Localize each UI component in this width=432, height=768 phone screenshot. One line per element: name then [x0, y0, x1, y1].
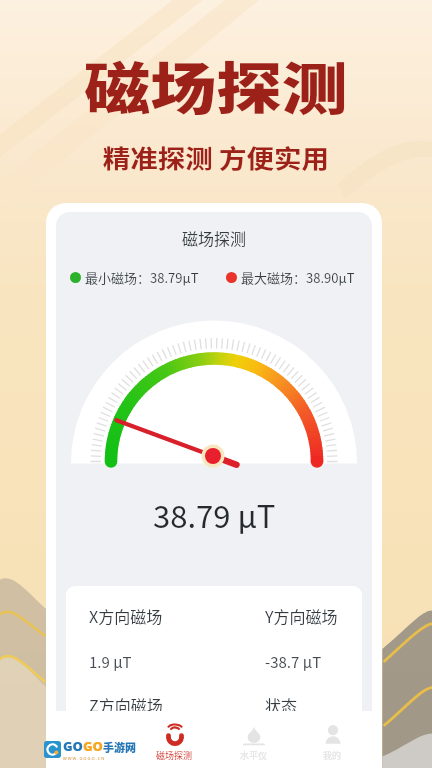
staticText: W W W . G O G O . C N [63, 756, 105, 761]
staticText: 最小磁场：38.79μT [85, 268, 199, 287]
staticText: 磁场探测 [156, 749, 193, 762]
staticText: 磁场探测 [182, 226, 247, 249]
other: 我的 [322, 724, 344, 746]
button[interactable]: 我的 [293, 711, 372, 768]
staticText: 38.79 μT [153, 492, 276, 537]
button[interactable]: 水平仪 [214, 711, 293, 768]
staticText: 精准探测 方便实用 [103, 139, 329, 175]
staticText: Z方向磁场 [89, 693, 265, 716]
staticText: 状态 [265, 693, 342, 716]
staticText: Y方向磁场 [265, 604, 342, 627]
staticText: 1.9 μT [89, 651, 265, 673]
staticText: 最大磁场：38.90μT [241, 268, 355, 287]
staticText: X方向磁场 [89, 604, 265, 627]
other: 水平仪 [243, 724, 265, 746]
staticText: 我的 [323, 749, 342, 762]
staticText: 手游网 [103, 739, 136, 755]
button[interactable]: 磁场探测 [135, 711, 214, 768]
staticText: GO [63, 737, 83, 755]
staticText: GO [83, 737, 103, 755]
staticText: 磁场探测 [84, 44, 349, 125]
other: 磁场探测 [164, 724, 186, 746]
staticText: 水平仪 [240, 749, 268, 762]
staticText: -38.7 μT [265, 651, 342, 673]
